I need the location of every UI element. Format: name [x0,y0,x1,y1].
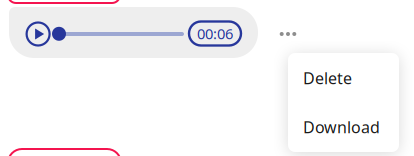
button[interactable]: Download [288,103,414,151]
staticText: 00:06 [197,24,233,43]
staticText: Delete [303,67,352,89]
button[interactable]: Delete [288,53,414,103]
button[interactable]: More options [272,20,304,48]
button[interactable]: 00:06 [9,7,258,58]
staticText: Download [303,116,380,138]
